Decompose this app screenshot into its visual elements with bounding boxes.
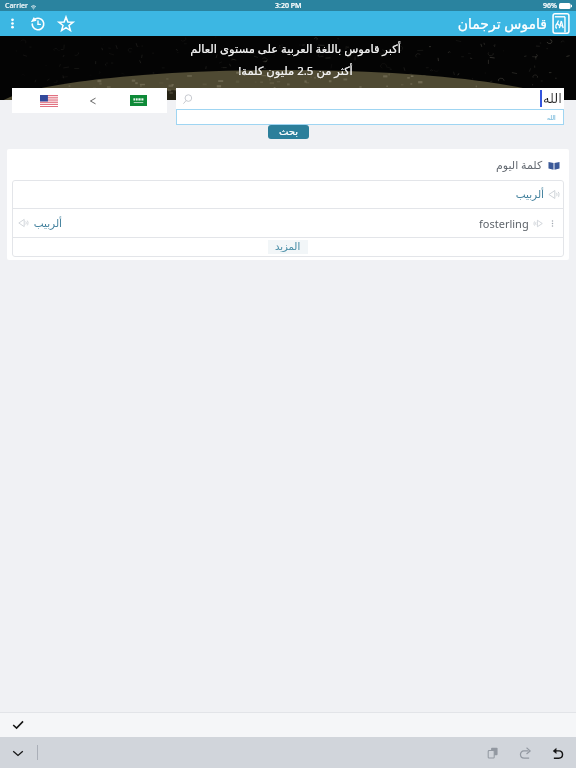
button[interactable]: الله	[176, 88, 564, 109]
staticText: قاموس ترجمان	[457, 14, 547, 33]
staticText: ألربيب	[33, 217, 62, 229]
button[interactable]: Hide keyboard	[9, 744, 27, 762]
button[interactable]: Menu	[547, 218, 558, 229]
staticText: أكثر من 2.5 مليون كلمة!	[238, 63, 353, 79]
staticText: كلمة اليوم	[496, 157, 543, 172]
button[interactable]: ألربيب	[12, 180, 564, 208]
button[interactable]: Favourites	[51, 11, 81, 36]
staticText: fosterling	[479, 216, 529, 231]
button[interactable]: الله	[176, 109, 564, 125]
staticText: Carrier	[5, 1, 28, 11]
button[interactable]: History	[25, 11, 51, 36]
button[interactable]: More options	[0, 11, 25, 36]
staticText: ألربيب	[515, 188, 544, 200]
button[interactable]: ألربيب	[12, 209, 564, 237]
staticText: 3:20 PM	[275, 1, 302, 11]
button[interactable]: Done	[9, 716, 27, 734]
staticText: 96%	[543, 1, 557, 11]
button[interactable]: قاموس ترجمان	[457, 13, 570, 34]
button[interactable]: بحث	[268, 125, 309, 139]
button[interactable]: Arabic	[109, 88, 167, 113]
staticText: أكبر قاموس باللغة العربية على مستوى العا…	[190, 41, 401, 57]
staticText: الله	[547, 114, 556, 121]
button[interactable]: المزيد	[268, 240, 308, 254]
button[interactable]: Redo	[514, 742, 536, 764]
button[interactable]: كلمة اليوم	[7, 149, 560, 180]
button[interactable]: English	[12, 88, 84, 113]
staticText: بحث	[279, 126, 299, 138]
button[interactable]: Swap languages	[84, 88, 109, 113]
button[interactable]: Undo	[546, 742, 568, 764]
button[interactable]: Copy	[482, 742, 504, 764]
staticText: المزيد	[275, 241, 301, 253]
staticText: الله	[543, 91, 562, 106]
